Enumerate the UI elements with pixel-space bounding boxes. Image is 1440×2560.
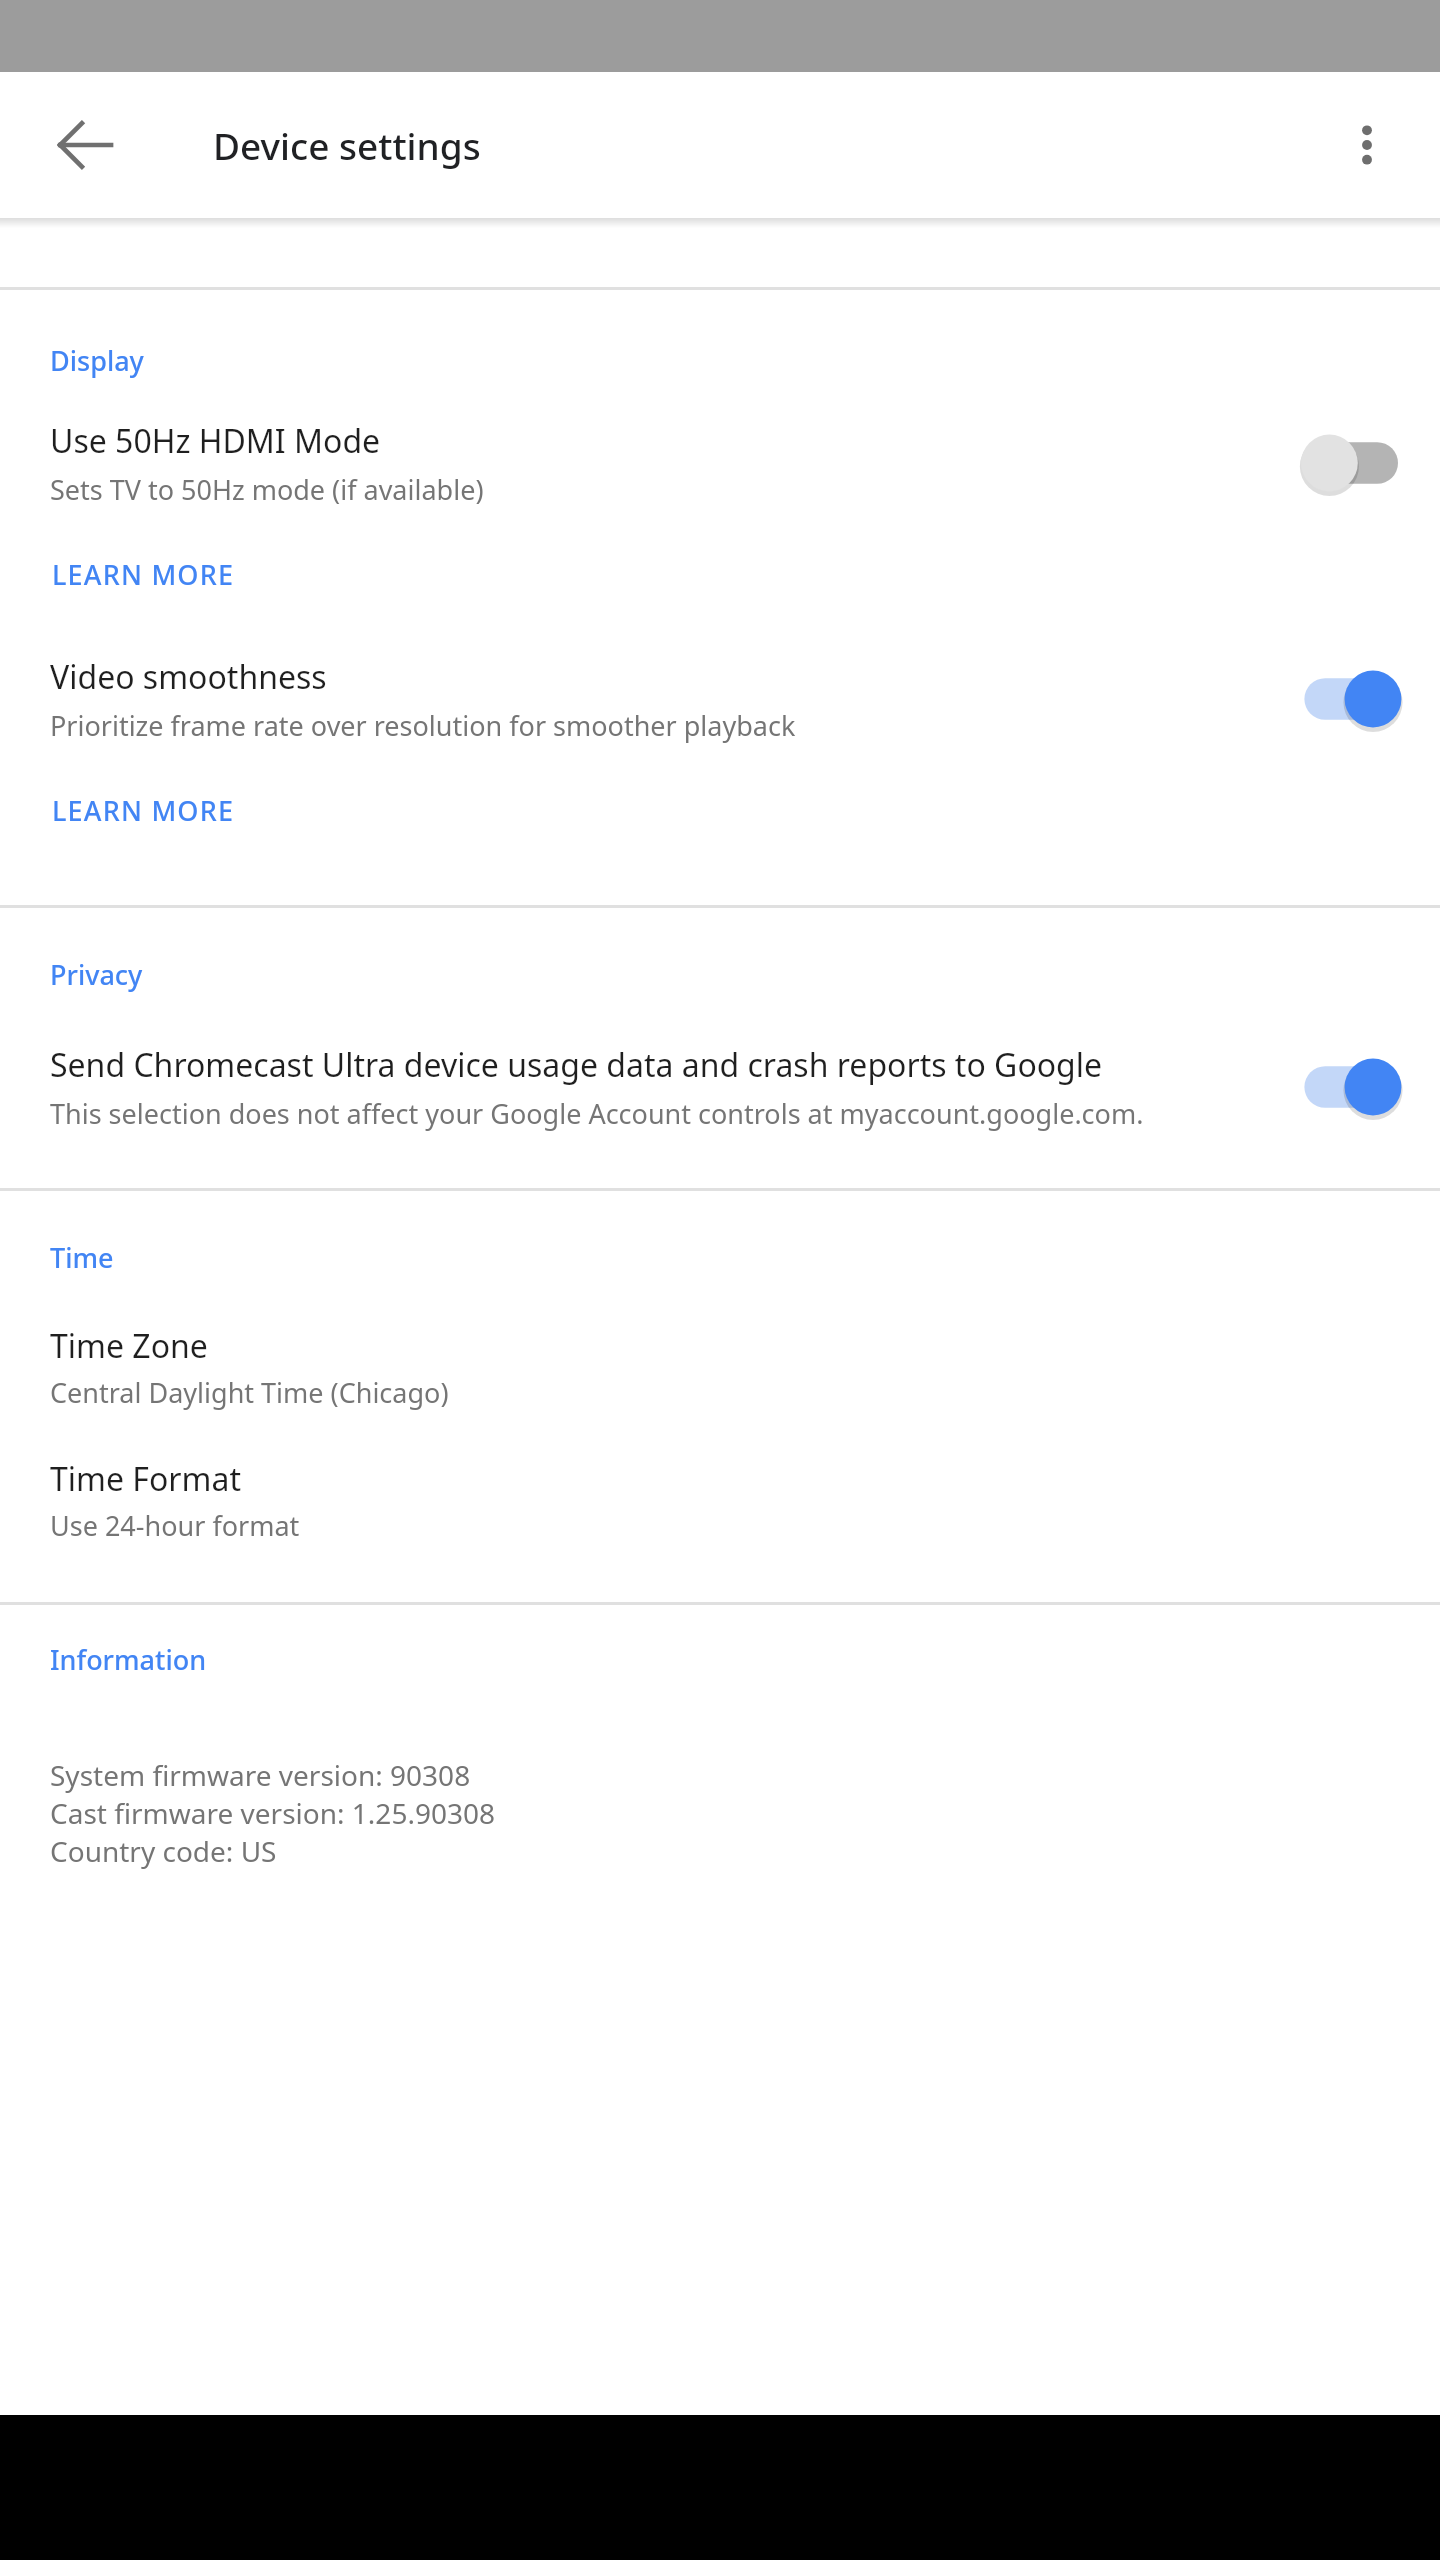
staticText: Central Daylight Time (Chicago) bbox=[50, 1374, 449, 1411]
staticText: Time Format bbox=[50, 1457, 241, 1501]
staticText: System firmware version: 90308 bbox=[50, 1756, 471, 1794]
button[interactable]: LEARN MORE bbox=[50, 786, 237, 835]
staticText: Cast firmware version: 1.25.90308 bbox=[50, 1794, 495, 1832]
staticText: Sets TV to 50Hz mode (if available) bbox=[50, 471, 484, 508]
button[interactable]: LEARN MORE bbox=[50, 550, 237, 599]
staticText: Use 50Hz HDMI Mode bbox=[50, 419, 381, 463]
button[interactable]: Use 50Hz HDMI Mode bbox=[0, 419, 1440, 508]
staticText: LEARN MORE bbox=[52, 792, 235, 829]
staticText: Time bbox=[50, 1239, 114, 1276]
staticText: Device settings bbox=[213, 120, 481, 170]
staticText: Display bbox=[50, 342, 144, 379]
staticText: Time Zone bbox=[50, 1324, 208, 1368]
staticText: Video smoothness bbox=[50, 655, 327, 699]
staticText: Privacy bbox=[50, 956, 143, 993]
button[interactable]: Back bbox=[30, 90, 140, 200]
staticText: Send Chromecast Ultra device usage data … bbox=[50, 1043, 1103, 1087]
button[interactable]: More options bbox=[1312, 90, 1422, 200]
button[interactable]: Time Zone bbox=[0, 1324, 1440, 1411]
staticText: Country code: US bbox=[50, 1832, 277, 1870]
staticText: Information bbox=[50, 1641, 207, 1678]
staticText: This selection does not affect your Goog… bbox=[50, 1095, 1144, 1132]
button[interactable]: Time Format bbox=[0, 1457, 1440, 1544]
button[interactable]: Send Chromecast Ultra device usage data … bbox=[0, 1043, 1440, 1132]
staticText: LEARN MORE bbox=[52, 556, 235, 593]
staticText: Prioritize frame rate over resolution fo… bbox=[50, 707, 796, 744]
button[interactable]: Video smoothness bbox=[0, 655, 1440, 744]
staticText: Use 24-hour format bbox=[50, 1507, 300, 1544]
